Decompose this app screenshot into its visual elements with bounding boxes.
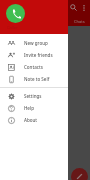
button[interactable]: Caller xyxy=(0,0,68,34)
staticText: Settings xyxy=(24,93,42,99)
button[interactable]: New group xyxy=(0,37,68,49)
staticText: Caller xyxy=(7,25,18,30)
button[interactable]: Search xyxy=(68,2,79,13)
staticText: Invite friends xyxy=(24,52,53,58)
staticText: New group xyxy=(24,40,48,46)
staticText: Chats xyxy=(74,19,85,24)
staticText: About xyxy=(24,117,38,123)
staticText: Help xyxy=(24,105,34,111)
staticText: Note to Self xyxy=(24,76,50,82)
button[interactable]: Help xyxy=(0,102,68,114)
staticText: Contacts xyxy=(24,64,43,70)
button[interactable]: About xyxy=(0,114,68,126)
button[interactable]: Invite friends xyxy=(0,49,68,61)
button[interactable]: Contacts xyxy=(0,61,68,73)
button[interactable]: Note to Self xyxy=(0,73,68,85)
button[interactable]: More options xyxy=(79,3,89,13)
button[interactable]: Settings xyxy=(0,90,68,102)
button[interactable]: New chat xyxy=(71,168,88,180)
